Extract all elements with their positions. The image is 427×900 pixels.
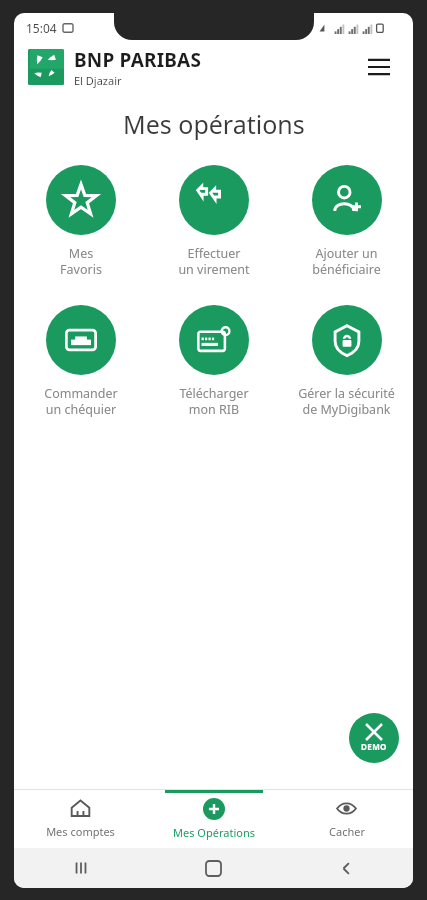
staticText: 15:04: [26, 20, 57, 36]
staticText: Commander un chéquier: [44, 385, 118, 417]
staticText: BNP PARIBAS: [74, 47, 202, 73]
staticText: Télécharger mon RIB: [179, 385, 249, 417]
button[interactable]: Mes Opérations: [147, 790, 280, 848]
button[interactable]: Gérer la sécurité de MyDigibank: [280, 303, 413, 419]
button[interactable]: Effectuer un virement: [147, 163, 280, 279]
button[interactable]: Mes Favoris: [14, 163, 147, 279]
button[interactable]: Mes comptes: [14, 790, 147, 848]
button[interactable]: Menu: [359, 47, 399, 87]
button[interactable]: Commander un chéquier: [14, 303, 147, 419]
staticText: Effectuer un virement: [178, 245, 250, 277]
staticText: Ajouter un bénéficiaire: [312, 245, 381, 277]
button[interactable]: Télécharger mon RIB: [147, 303, 280, 419]
staticText: El Djazair: [74, 73, 122, 88]
button[interactable]: Close demo: [349, 713, 399, 763]
button[interactable]: Cacher: [280, 790, 413, 848]
staticText: Cacher: [329, 824, 365, 839]
staticText: DEMO: [361, 741, 387, 752]
staticText: Mes Opérations: [173, 825, 255, 840]
staticText: Mes Favoris: [60, 245, 102, 277]
button[interactable]: Ajouter un bénéficiaire: [280, 163, 413, 279]
staticText: Mes opérations: [123, 107, 305, 141]
staticText: Mes comptes: [46, 824, 115, 839]
staticText: Gérer la sécurité de MyDigibank: [298, 385, 395, 417]
